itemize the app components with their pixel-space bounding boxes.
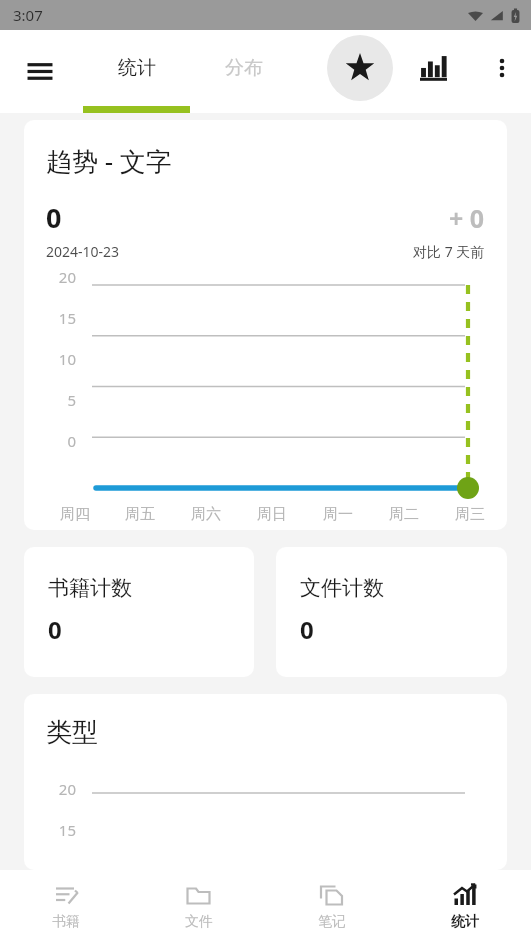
staticText: 3:07	[13, 5, 43, 25]
button[interactable]: 分布	[190, 30, 297, 113]
staticText: 周六	[191, 505, 221, 524]
button[interactable]: 文件计数	[276, 547, 507, 677]
button[interactable]: 文件	[132, 870, 265, 944]
button[interactable]: 书籍计数	[24, 547, 254, 677]
staticText: 0	[46, 199, 62, 236]
staticText: 5	[24, 390, 76, 410]
staticText: 15	[24, 308, 76, 328]
staticText: 类型	[46, 716, 98, 749]
staticText: 文件计数	[300, 575, 384, 601]
staticText: 20	[24, 267, 76, 287]
staticText: 统计	[118, 56, 156, 80]
staticText: 书籍	[52, 913, 80, 931]
staticText: 文件	[185, 913, 213, 931]
staticText: 对比 7 天前	[413, 242, 485, 261]
staticText: 统计	[451, 913, 479, 931]
button[interactable]: Statistics	[409, 44, 457, 92]
button[interactable]: Menu	[14, 46, 66, 98]
staticText: 书籍计数	[48, 575, 132, 601]
staticText: 周四	[60, 505, 90, 524]
staticText: 10	[24, 349, 76, 369]
staticText: 周二	[389, 505, 419, 524]
button[interactable]: 笔记	[265, 870, 398, 944]
staticText: 周日	[257, 505, 287, 524]
button[interactable]: More options	[479, 45, 525, 91]
staticText: 分布	[225, 56, 263, 80]
button[interactable]: 趋势 - 文字	[24, 120, 507, 530]
button[interactable]: Favorite	[327, 35, 393, 101]
staticText: 0	[24, 431, 76, 451]
staticText: 笔记	[318, 913, 346, 931]
button[interactable]: 统计	[398, 870, 531, 944]
staticText: 周三	[455, 505, 485, 524]
staticText: 2024-10-23	[46, 242, 120, 261]
button[interactable]: 书籍	[0, 870, 132, 944]
staticText: 周五	[125, 505, 155, 524]
staticText: 周一	[323, 505, 353, 524]
button[interactable]: 类型	[24, 694, 507, 870]
staticText: 20	[24, 779, 76, 799]
staticText: 15	[24, 820, 76, 840]
staticText: + 0	[449, 201, 485, 235]
button[interactable]: 统计	[83, 30, 190, 113]
staticText: 0	[300, 613, 314, 646]
staticText: 趋势 - 文字	[46, 143, 172, 179]
staticText: 0	[48, 613, 62, 646]
